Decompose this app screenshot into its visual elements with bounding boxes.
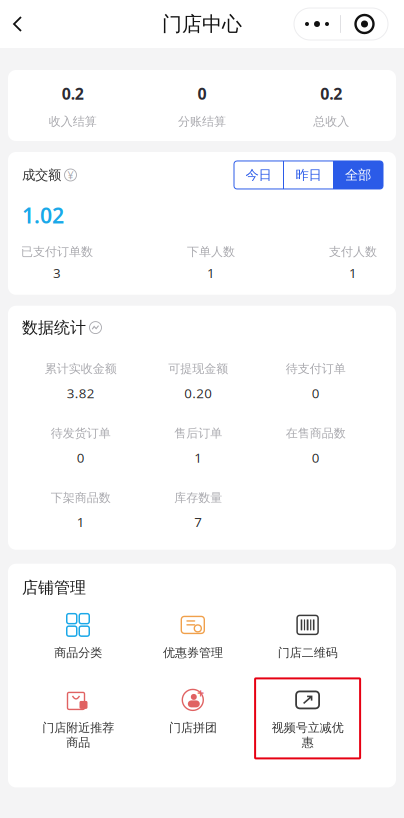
button[interactable]: 门店附近推荐商品 — [21, 678, 135, 758]
staticText: 0 — [197, 83, 206, 104]
staticText: 1.02 — [22, 201, 64, 229]
staticText: 下单人数 — [187, 244, 235, 259]
staticText: 3 — [53, 264, 61, 282]
staticText: 下架商品数 — [51, 490, 111, 505]
staticText: + — [197, 685, 204, 701]
staticText: 门店中心 — [162, 12, 242, 36]
staticText: 数据统计 — [22, 318, 86, 337]
button[interactable]: 优惠券管理 — [135, 603, 250, 665]
staticText: 0.20 — [184, 384, 212, 402]
staticText: 库存数量 — [174, 490, 222, 505]
button[interactable]: More options — [294, 8, 388, 40]
staticText: 全部 — [345, 167, 371, 183]
staticText: 0.2 — [62, 83, 84, 104]
staticText: 门店二维码 — [278, 645, 338, 660]
button[interactable]: 全部 — [333, 161, 383, 189]
staticText: 优惠券管理 — [163, 645, 223, 660]
staticText: 0.2 — [320, 83, 342, 104]
staticText: 分账结算 — [178, 114, 226, 129]
staticText: 1 — [77, 513, 85, 531]
button[interactable]: 视频号立减优惠 — [250, 678, 365, 758]
staticText: 收入结算 — [49, 114, 97, 129]
staticText: 总收入 — [313, 114, 349, 129]
staticText: ¥ — [67, 168, 73, 182]
staticText: 累计实收金额 — [45, 361, 117, 376]
button[interactable]: 昨日 — [284, 161, 333, 189]
button[interactable]: + — [135, 678, 250, 758]
staticText: 待发货订单 — [51, 426, 111, 441]
staticText: 视频号立减优惠 — [272, 720, 344, 750]
staticText: 1 — [207, 264, 215, 282]
staticText: 待支付订单 — [286, 361, 346, 376]
button[interactable]: 商品分类 — [21, 603, 135, 665]
staticText: 店铺管理 — [22, 578, 86, 597]
staticText: 商品分类 — [54, 645, 102, 660]
staticText: 已支付订单数 — [21, 244, 93, 259]
staticText: 0 — [312, 449, 320, 466]
staticText: 在售商品数 — [286, 426, 346, 441]
button[interactable]: 门店二维码 — [250, 603, 365, 665]
staticText: 可提现金额 — [168, 361, 228, 376]
staticText: 1 — [194, 449, 202, 466]
staticText: 昨日 — [295, 167, 321, 183]
staticText: 门店附近推荐商品 — [42, 720, 114, 750]
staticText: 0 — [77, 449, 85, 466]
staticText: 售后订单 — [174, 426, 222, 441]
staticText: 0 — [312, 384, 320, 402]
staticText: 7 — [194, 513, 202, 531]
staticText: 1 — [349, 264, 357, 282]
staticText: 门店拼团 — [169, 720, 217, 735]
button[interactable]: Back — [0, 6, 35, 42]
staticText: 3.82 — [67, 384, 95, 402]
staticText: 成交额 — [22, 167, 61, 183]
staticText: 支付人数 — [329, 244, 377, 259]
staticText: 今日 — [245, 167, 271, 183]
button[interactable]: 今日 — [234, 161, 283, 189]
